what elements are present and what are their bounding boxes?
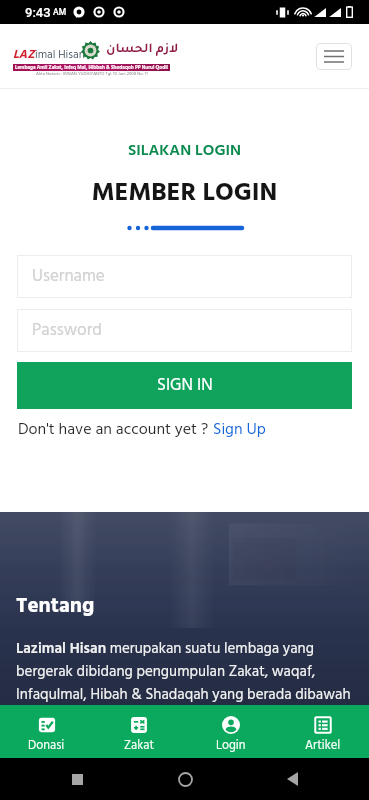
button[interactable]: Home — [168, 762, 202, 796]
staticText: Artikel — [305, 736, 341, 756]
button[interactable]: Back — [275, 762, 309, 796]
staticText: Akta Notaris : IRWAN YUDHIYANTO Tgl. 10 … — [36, 70, 148, 77]
button[interactable]: SIGN IN — [17, 362, 352, 409]
staticText: SIGN IN — [157, 372, 213, 399]
staticText: LAZ — [13, 45, 35, 64]
button[interactable]: Login — [185, 705, 277, 758]
button[interactable]: Artikel — [277, 705, 369, 758]
button[interactable]: Donasi — [0, 705, 93, 758]
staticText: Donasi — [28, 736, 65, 756]
staticText: Lembaga Amil Zakat, Infaq Mal, Hibbah & … — [15, 64, 168, 71]
staticText: Tentang — [16, 590, 95, 624]
staticText: MEMBER LOGIN — [0, 173, 369, 214]
staticText: Zakat — [124, 736, 155, 756]
staticText: imal Hisan — [35, 46, 85, 64]
button[interactable]: Sign Up — [213, 417, 266, 443]
staticText: Lazimal Hisan merupakan suatu lembaga ya… — [16, 637, 357, 705]
button[interactable]: Username — [17, 255, 352, 298]
staticText: 9:43 — [25, 5, 51, 20]
button[interactable]: Zakat — [93, 705, 185, 758]
button[interactable]: Menu — [316, 43, 352, 70]
staticText: SILAKAN LOGIN — [0, 138, 369, 164]
staticText: Login — [216, 736, 246, 756]
staticText: Sign Up — [213, 417, 266, 443]
staticText: Password — [32, 317, 102, 344]
button[interactable]: Recents — [60, 762, 94, 796]
staticText: Username — [32, 263, 105, 290]
button[interactable]: Password — [17, 309, 352, 352]
staticText: لازم الحسان — [106, 43, 179, 57]
staticText: Don't have an account yet ? — [18, 417, 213, 443]
staticText: AM — [51, 7, 67, 17]
